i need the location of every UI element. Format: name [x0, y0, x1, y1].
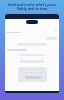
- button[interactable]: App bar: [5, 14, 59, 19]
- button[interactable]: Encrypted: [26, 20, 38, 24]
- staticText: Send and receive what's yours. Safely, a…: [8, 3, 57, 11]
- button[interactable]: [18, 67, 47, 82]
